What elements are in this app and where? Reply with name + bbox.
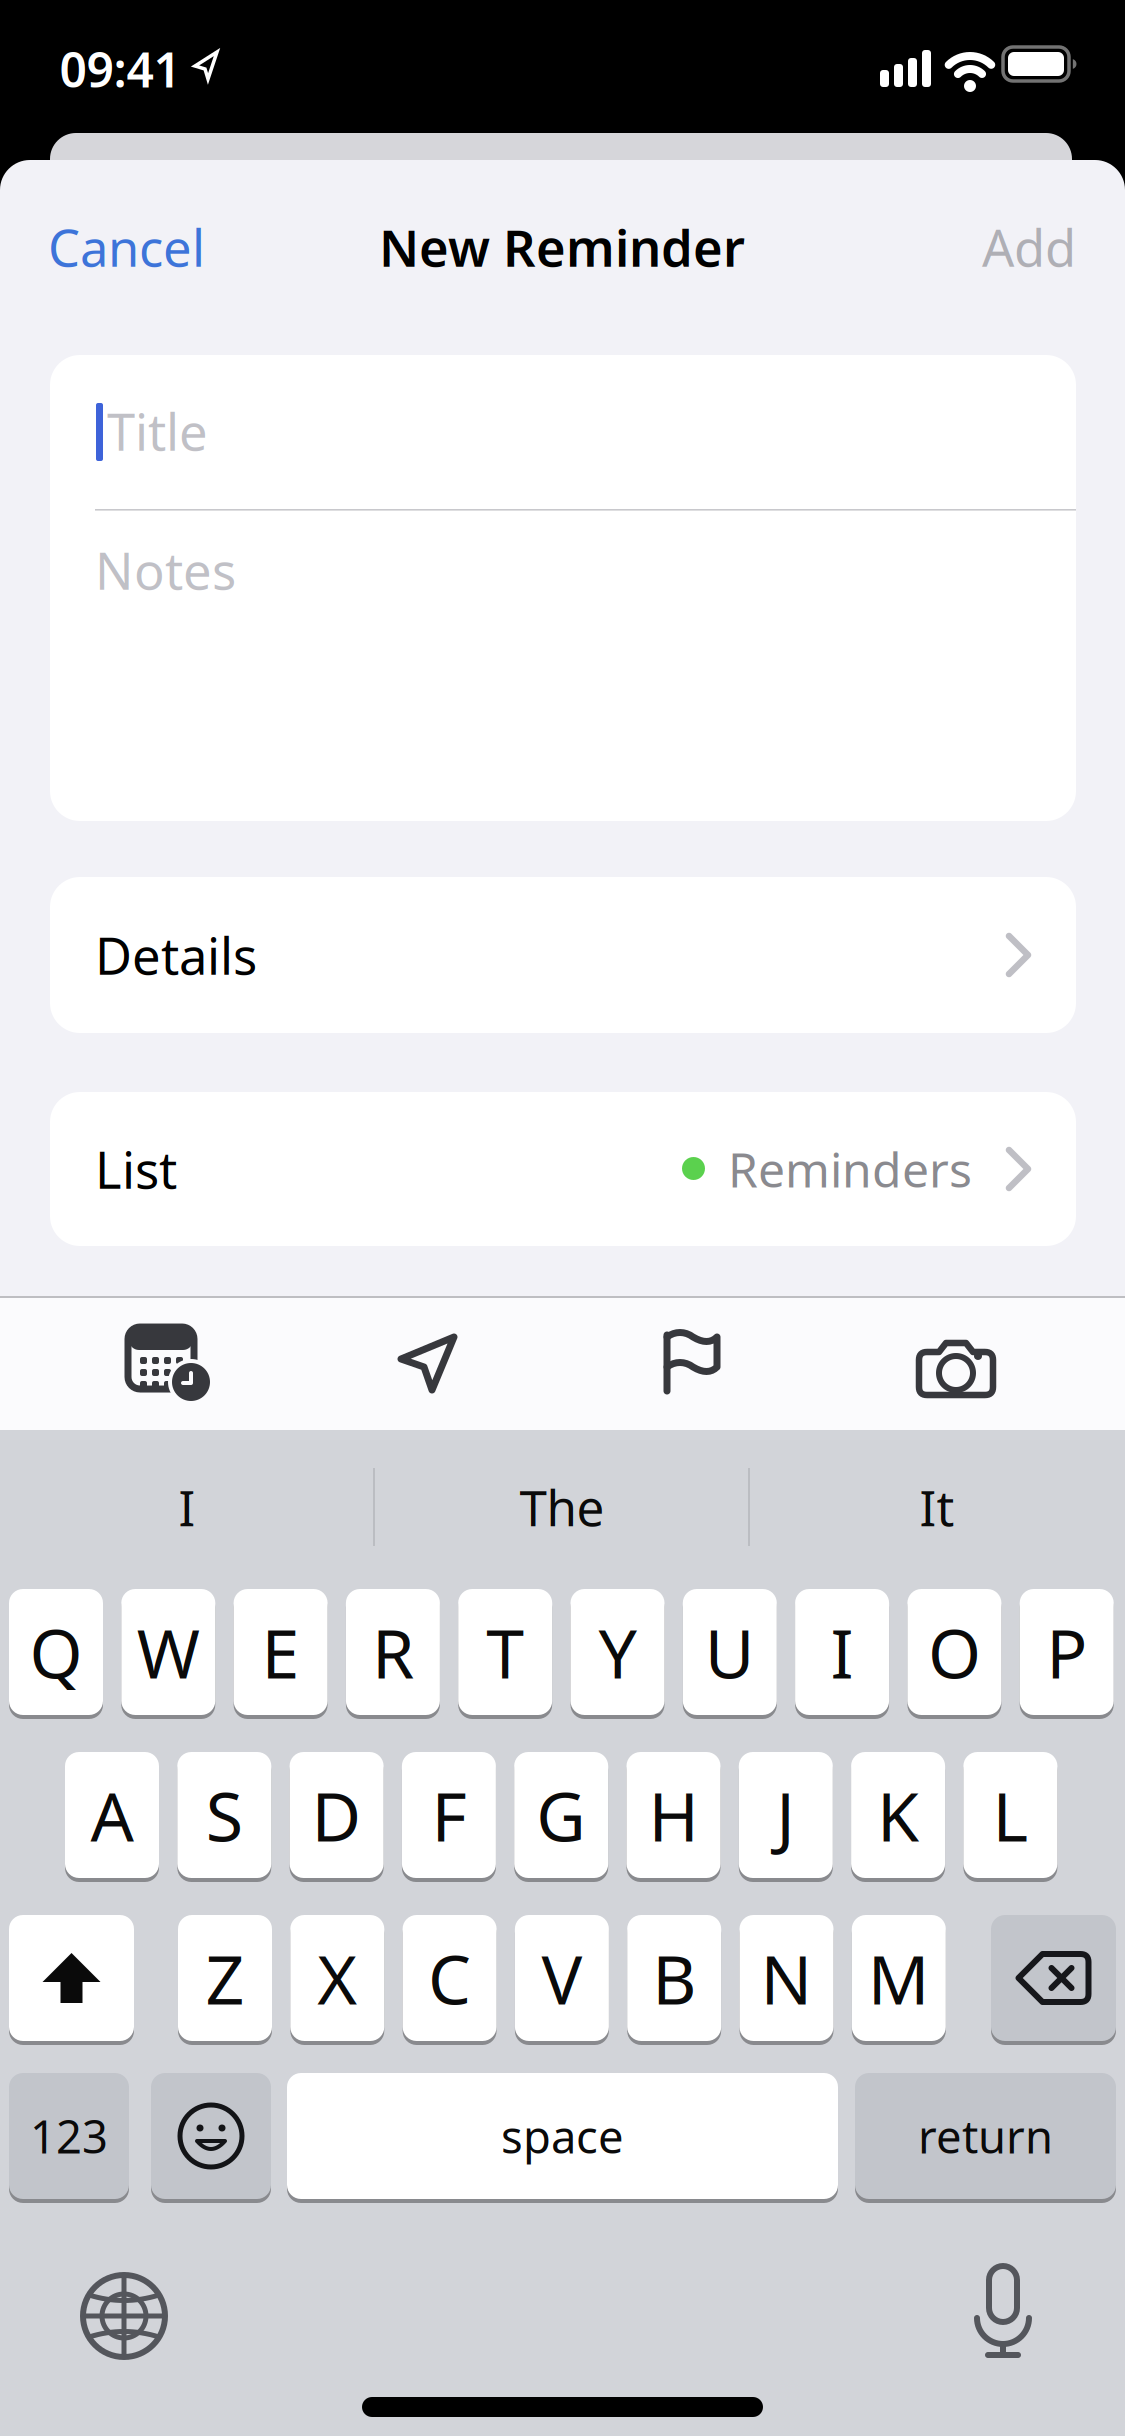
staticText: G (536, 1770, 586, 1860)
button[interactable]: J (739, 1752, 833, 1878)
staticText: New Reminder (379, 213, 745, 281)
staticText: S (206, 1770, 243, 1860)
button[interactable]: 123 (9, 2073, 129, 2199)
button[interactable]: I (795, 1589, 889, 1715)
button[interactable]: B (627, 1915, 721, 2041)
staticText: The (519, 1474, 604, 1540)
button[interactable]: V (515, 1915, 609, 2041)
button[interactable]: Emoji (151, 2073, 271, 2199)
button[interactable]: Next keyboard (82, 2274, 166, 2358)
staticText: It (919, 1474, 954, 1540)
button[interactable]: P (1020, 1589, 1114, 1715)
staticText: X (317, 1933, 357, 2023)
button[interactable]: C (403, 1915, 497, 2041)
staticText: Cancel (48, 213, 205, 281)
staticText: Y (598, 1607, 636, 1697)
button[interactable]: Delete (991, 1915, 1116, 2041)
staticText: List (95, 1135, 177, 1203)
staticText: Title (107, 397, 208, 465)
button[interactable]: U (683, 1589, 777, 1715)
button[interactable]: Flag (663, 1331, 725, 1395)
button[interactable]: Shift (9, 1915, 134, 2041)
button[interactable]: H (626, 1752, 720, 1878)
button[interactable]: The (382, 1452, 742, 1562)
staticText: space (501, 2106, 624, 2166)
staticText: N (760, 1933, 812, 2023)
staticText: J (776, 1770, 795, 1860)
staticText: Details (95, 921, 257, 989)
button[interactable]: N (739, 1915, 833, 2041)
button[interactable]: It (757, 1452, 1117, 1562)
button[interactable]: Dictate (974, 2266, 1032, 2358)
button[interactable]: M (852, 1915, 946, 2041)
staticText: W (137, 1607, 200, 1697)
staticText: Q (29, 1607, 82, 1697)
staticText: K (877, 1770, 919, 1860)
button[interactable]: D (290, 1752, 384, 1878)
staticText: F (431, 1770, 466, 1860)
staticText: 09:41 (59, 37, 180, 101)
button[interactable]: Add Date (128, 1328, 210, 1404)
button[interactable]: space (287, 2073, 838, 2199)
button[interactable]: F (402, 1752, 496, 1878)
button[interactable]: T (458, 1589, 552, 1715)
button[interactable]: Add Photo (917, 1340, 997, 1398)
button[interactable]: K (851, 1752, 945, 1878)
button[interactable]: O (907, 1589, 1001, 1715)
button[interactable]: G (514, 1752, 608, 1878)
staticText: C (428, 1933, 471, 2023)
staticText: Notes (95, 536, 236, 604)
button[interactable]: R (346, 1589, 440, 1715)
button[interactable]: Cancel (48, 202, 268, 292)
staticText: Reminders (728, 1137, 972, 1201)
button[interactable]: W (121, 1589, 215, 1715)
staticText: L (992, 1770, 1028, 1860)
button[interactable]: Z (178, 1915, 272, 2041)
staticText: D (312, 1770, 362, 1860)
staticText: M (868, 1933, 930, 2023)
staticText: E (262, 1607, 300, 1697)
staticText: V (541, 1933, 582, 2023)
button[interactable]: S (177, 1752, 271, 1878)
staticText: 123 (30, 2106, 108, 2166)
button[interactable]: L (963, 1752, 1057, 1878)
staticText: U (705, 1607, 755, 1697)
button[interactable]: Y (570, 1589, 664, 1715)
staticText: B (652, 1933, 696, 2023)
button[interactable]: A (65, 1752, 159, 1878)
button[interactable]: return (855, 2073, 1116, 2199)
staticText: I (831, 1607, 854, 1697)
staticText: Add (982, 213, 1076, 281)
staticText: R (372, 1607, 414, 1697)
staticText: A (90, 1770, 133, 1860)
button[interactable]: List (50, 1092, 1076, 1246)
staticText: return (918, 2106, 1053, 2166)
button[interactable]: X (290, 1915, 384, 2041)
button[interactable]: I (7, 1452, 367, 1562)
staticText: Z (205, 1933, 244, 2023)
staticText: I (178, 1474, 195, 1540)
staticText: P (1046, 1607, 1087, 1697)
button[interactable]: Details (50, 877, 1076, 1033)
staticText: O (928, 1607, 981, 1697)
staticText: H (648, 1770, 698, 1860)
staticText: T (486, 1607, 524, 1697)
button[interactable]: Q (9, 1589, 103, 1715)
button[interactable]: Add (926, 202, 1076, 292)
button[interactable]: Add Location (396, 1331, 462, 1397)
button[interactable]: E (234, 1589, 328, 1715)
